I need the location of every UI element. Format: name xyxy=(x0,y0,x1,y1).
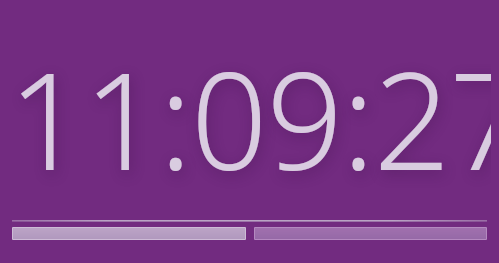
staticText: 11:09:27 xyxy=(8,27,491,210)
button[interactable]: Stopwatch display xyxy=(0,0,499,263)
button[interactable]: Lap progress xyxy=(12,227,246,240)
button[interactable]: 11:09:27 xyxy=(8,27,491,210)
button[interactable]: Total progress xyxy=(254,227,487,240)
